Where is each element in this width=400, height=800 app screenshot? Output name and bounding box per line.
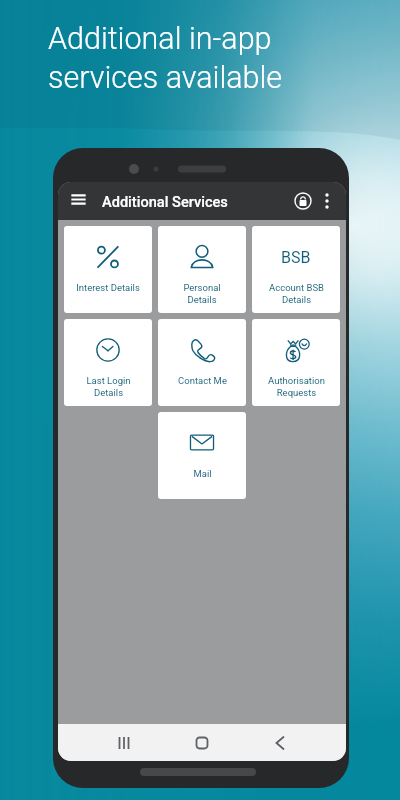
button[interactable]: Menu (64, 187, 93, 216)
staticText: Interest Details (76, 282, 140, 293)
button[interactable]: Authorisation Requests (252, 319, 340, 406)
button[interactable]: Home (186, 727, 218, 759)
button[interactable]: Contact Me (158, 319, 246, 406)
button[interactable]: BSB (252, 226, 340, 313)
button[interactable]: More options (316, 190, 338, 212)
staticText: Authorisation Requests (268, 375, 325, 398)
button[interactable]: Log out (290, 188, 316, 214)
button[interactable]: Last Login Details (64, 319, 152, 406)
button[interactable]: Mail (158, 412, 246, 499)
button[interactable]: Recents (108, 727, 140, 759)
staticText: Contact Me (178, 375, 227, 386)
button[interactable]: Interest Details (64, 226, 152, 313)
staticText: BSB (281, 248, 311, 267)
staticText: Additional in-app services available (48, 21, 283, 95)
staticText: Last Login Details (86, 375, 131, 398)
staticText: Mail (193, 468, 212, 479)
button[interactable]: Back (264, 727, 296, 759)
staticText: Additional Services (102, 193, 228, 210)
staticText: Personal Details (183, 282, 221, 305)
button[interactable]: Personal Details (158, 226, 246, 313)
staticText: Account BSB Details (269, 282, 324, 305)
